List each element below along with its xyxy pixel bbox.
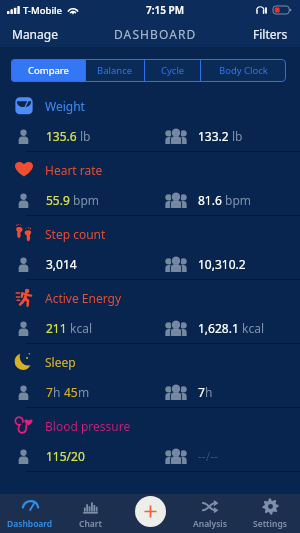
staticText: 7 xyxy=(198,384,205,400)
staticText: Weight xyxy=(45,98,85,114)
button[interactable]: Chart xyxy=(60,494,120,533)
staticText: lb xyxy=(232,128,243,144)
staticText: 115/20 xyxy=(46,448,85,464)
staticText: --/-- xyxy=(198,448,218,464)
staticText: Body Clock xyxy=(219,64,268,77)
staticText: Sleep xyxy=(45,354,76,370)
staticText: 133.2 xyxy=(198,128,229,144)
button[interactable]: Blood pressure xyxy=(0,408,300,471)
staticText: 55.9 xyxy=(46,192,70,208)
button[interactable]: Balance xyxy=(86,59,144,82)
button[interactable]: Cycle xyxy=(145,59,200,82)
staticText: Active Energy xyxy=(45,290,122,306)
staticText: bpm xyxy=(225,192,251,208)
button[interactable]: Active Energy xyxy=(0,280,300,343)
staticText: 1,628.1 xyxy=(198,320,239,336)
staticText: 7 xyxy=(46,384,53,400)
staticText: 211 xyxy=(46,320,67,336)
staticText: Analysis xyxy=(193,518,227,530)
staticText: h xyxy=(53,384,61,400)
button[interactable]: Dashboard xyxy=(0,494,60,533)
staticText: T-Mobile xyxy=(23,4,63,17)
button[interactable]: Compare xyxy=(11,59,85,82)
staticText: h xyxy=(205,384,213,400)
button[interactable]: Manage xyxy=(12,26,58,42)
button[interactable]: Settings xyxy=(240,494,300,533)
button[interactable]: Filters xyxy=(253,26,288,42)
staticText: 81.6 xyxy=(198,192,222,208)
staticText: Manage xyxy=(12,26,58,42)
staticText: Balance xyxy=(97,64,133,77)
staticText: Compare xyxy=(28,64,69,77)
staticText: Dashboard xyxy=(7,518,53,530)
staticText: bpm xyxy=(73,192,99,208)
staticText: 3,014 xyxy=(46,256,77,272)
staticText: 7:15 PM xyxy=(146,3,184,17)
staticText: m xyxy=(78,384,90,400)
staticText: DASHBOARD xyxy=(114,26,197,42)
button[interactable]: Weight xyxy=(0,88,300,151)
button[interactable]: Body Clock xyxy=(201,59,286,82)
button[interactable]: Heart rate xyxy=(0,152,300,215)
button[interactable]: Step count xyxy=(0,216,300,279)
staticText: kcal xyxy=(242,320,264,336)
staticText: Settings xyxy=(253,518,287,530)
staticText: 10,310.2 xyxy=(198,256,246,272)
staticText: kcal xyxy=(70,320,92,336)
button[interactable]: Analysis xyxy=(180,494,240,533)
button[interactable]: Sleep xyxy=(0,344,300,407)
staticText: Heart rate xyxy=(45,162,103,178)
staticText: Chart xyxy=(79,518,102,530)
staticText: lb xyxy=(80,128,91,144)
staticText: Step count xyxy=(45,226,106,242)
staticText: Filters xyxy=(253,26,288,42)
staticText: Blood pressure xyxy=(45,418,131,434)
staticText: 45 xyxy=(64,384,78,400)
staticText: Cycle xyxy=(161,64,185,77)
button[interactable]: Add xyxy=(135,496,166,527)
staticText: 135.6 xyxy=(46,128,77,144)
